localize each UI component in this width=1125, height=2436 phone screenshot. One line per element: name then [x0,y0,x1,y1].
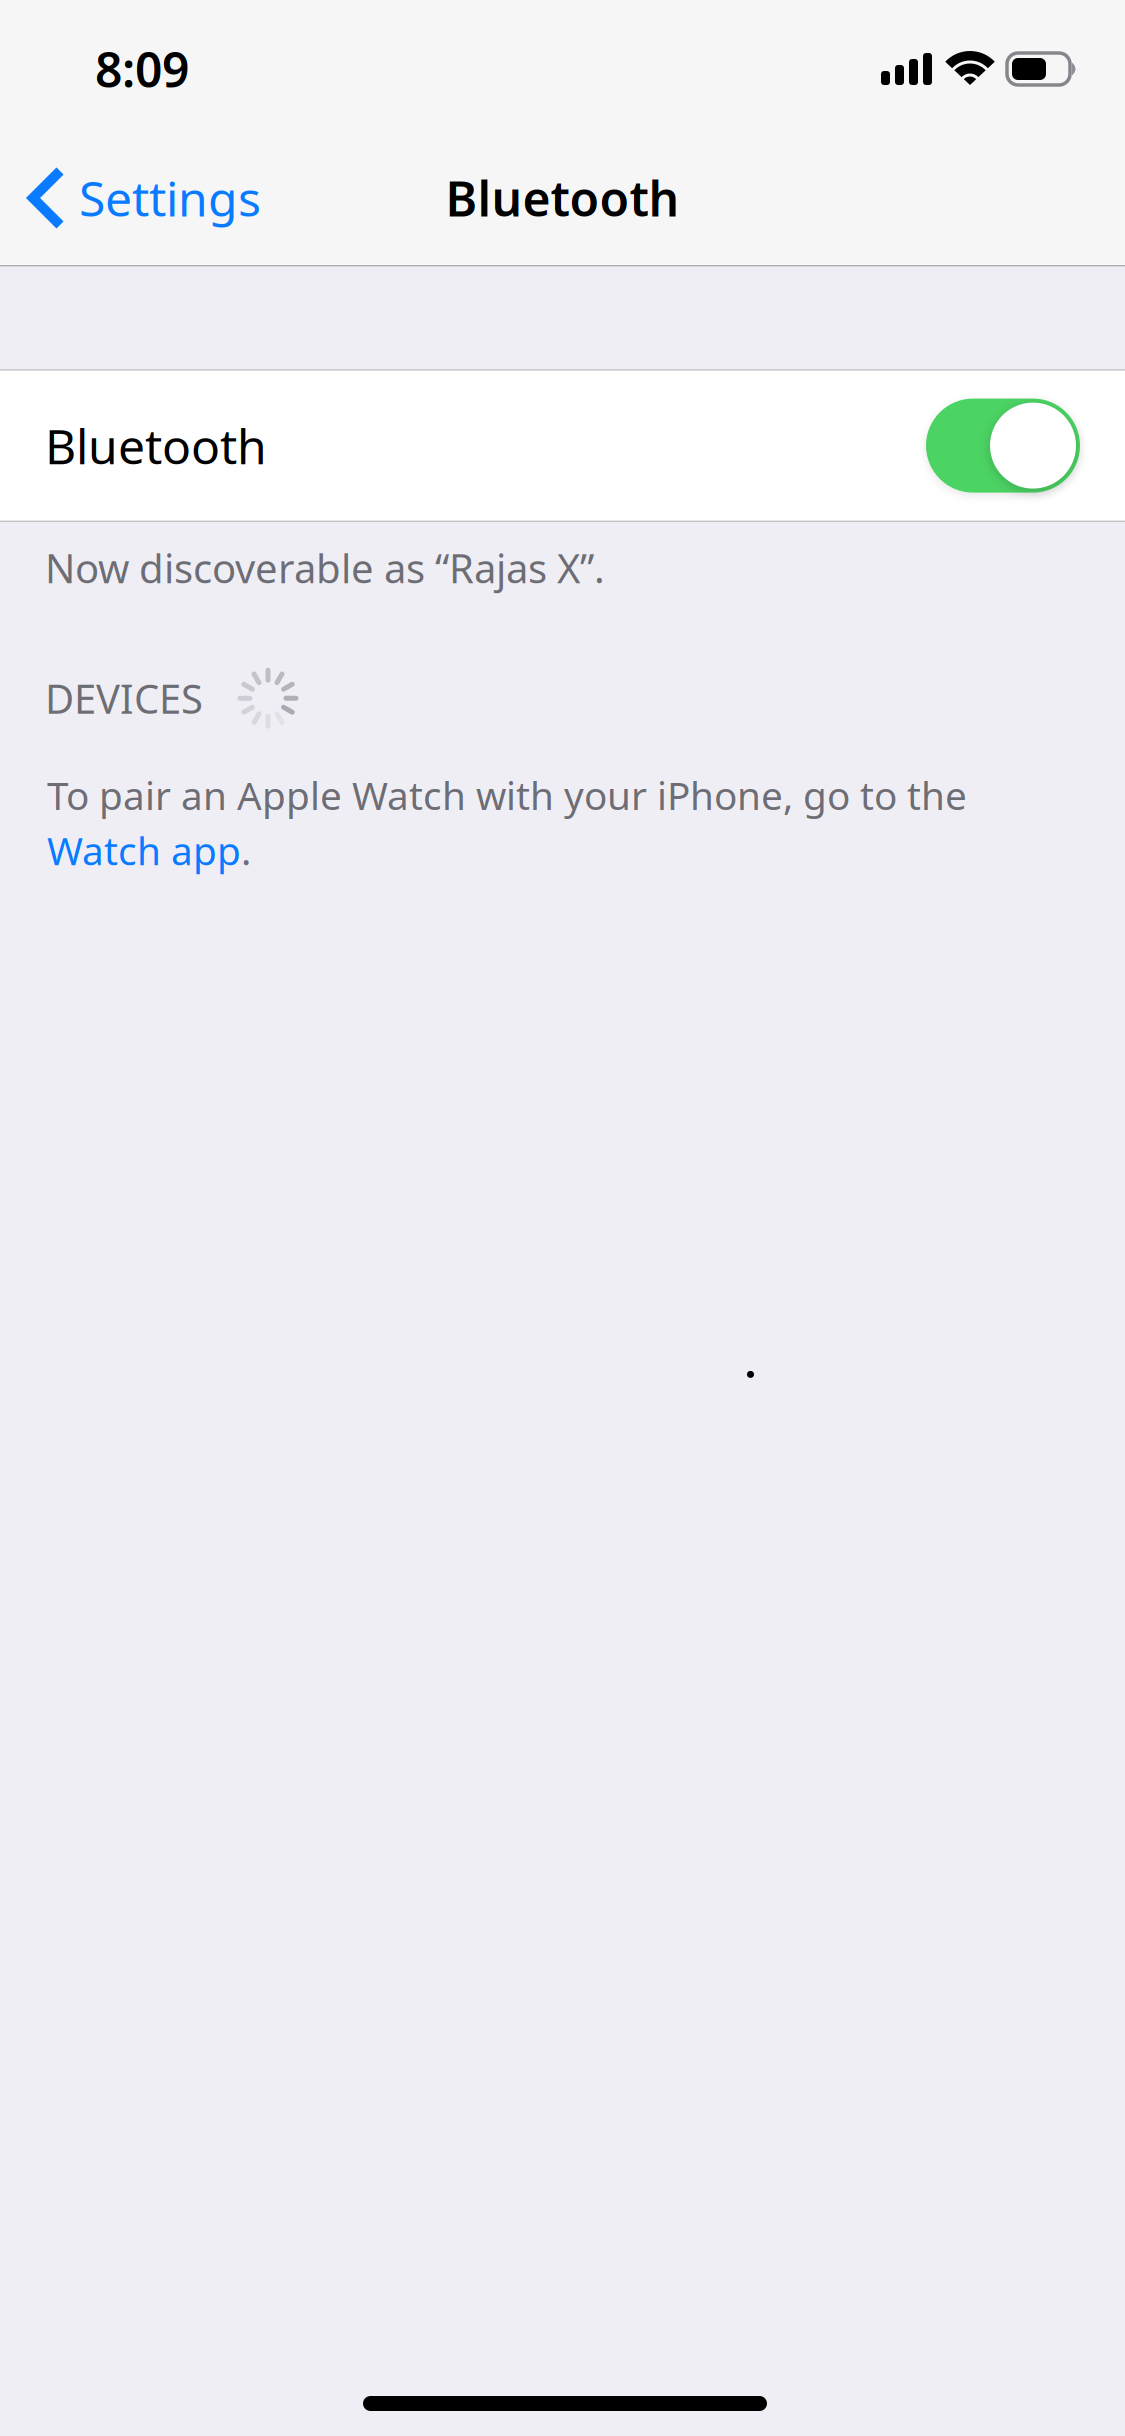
staticText: DEVICES [45,672,203,725]
staticText: Bluetooth [45,414,267,477]
staticText: Watch app [47,825,241,876]
staticText: . [241,825,251,876]
staticText: Bluetooth [445,166,679,230]
button[interactable]: Bluetooth, on [926,399,1080,493]
staticText: Settings [79,166,261,230]
button[interactable]: Bluetooth [0,369,1125,522]
staticText: 8:09 [95,37,189,101]
button[interactable]: Watch app [47,825,241,876]
staticText: To pair an Apple Watch with your iPhone,… [47,769,967,820]
button[interactable]: Settings [0,152,261,244]
staticText: Now discoverable as “Rajas X”. [45,541,605,594]
